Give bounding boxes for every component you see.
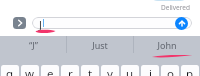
button[interactable]: u xyxy=(121,65,139,76)
button[interactable]: r xyxy=(61,65,79,76)
button[interactable] xyxy=(32,17,192,29)
staticText: “J” xyxy=(29,39,38,51)
button[interactable]: q xyxy=(1,65,19,76)
button[interactable]: t xyxy=(81,65,99,76)
staticText: u xyxy=(126,66,134,76)
staticText: t xyxy=(88,66,93,76)
button[interactable]: o xyxy=(161,65,179,76)
staticText: r xyxy=(68,66,73,76)
button[interactable]: John xyxy=(134,36,200,53)
button[interactable]: w xyxy=(21,65,39,76)
button[interactable]: y xyxy=(101,65,119,76)
staticText: i xyxy=(149,66,152,76)
staticText: J xyxy=(39,18,42,32)
button[interactable]: Just xyxy=(67,36,133,53)
button[interactable]: p xyxy=(181,65,199,76)
staticText: w xyxy=(25,66,35,76)
staticText: p xyxy=(186,66,194,76)
button[interactable]: Send xyxy=(175,17,188,30)
staticText: q xyxy=(6,66,14,76)
staticText: Just xyxy=(92,39,108,51)
button[interactable]: Expand toolbar xyxy=(13,17,26,29)
button[interactable]: e xyxy=(41,65,59,76)
button[interactable]: “J” xyxy=(0,36,66,53)
button[interactable]: i xyxy=(141,65,159,76)
staticText: o xyxy=(167,66,174,76)
staticText: e xyxy=(47,66,54,76)
staticText: y xyxy=(107,66,113,76)
staticText: Delivered xyxy=(161,3,190,12)
staticText: John xyxy=(157,39,177,51)
